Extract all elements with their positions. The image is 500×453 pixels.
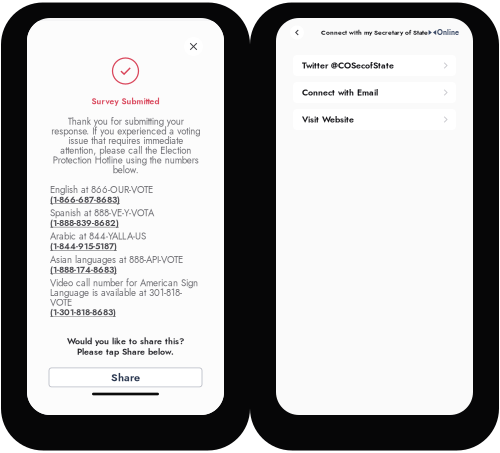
staticText: Video call number for American Sign Lang… [50, 278, 198, 307]
staticText: Please tap Share below. [77, 347, 174, 356]
staticText: Connect with my Secretary of State [321, 29, 428, 36]
staticText: Asian languages at 888-API-VOTE [50, 255, 183, 264]
button[interactable]: Back [290, 25, 304, 39]
staticText: Thank you for submitting your response. … [51, 116, 200, 175]
staticText: Survey Submitted [91, 97, 159, 105]
button[interactable]: Connect with Email [293, 82, 456, 103]
staticText: Share [111, 372, 140, 383]
staticText: Spanish at 888-VE-Y-VOTA [50, 208, 154, 218]
staticText: Arabic at 844-YALLA-US [50, 231, 146, 241]
staticText: (1-888-839-8682) [50, 218, 119, 227]
staticText: (1-888-174-8683) [50, 265, 117, 274]
staticText: Online [437, 29, 459, 36]
staticText: (1-844-915-5187) [50, 242, 117, 251]
staticText: Twitter @COSecofState [302, 61, 394, 70]
staticText: Visit Website [302, 115, 354, 124]
staticText: (1-301-818-8683) [50, 308, 116, 317]
staticText: Connect with Email [302, 88, 378, 97]
staticText: (1-866-687-8683) [50, 195, 120, 204]
staticText: Would you like to share this? [67, 337, 184, 346]
staticText: English at 866-OUR-VOTE [50, 185, 153, 194]
button[interactable]: Twitter @COSecofState [293, 55, 456, 76]
button[interactable]: Close [184, 37, 203, 56]
button[interactable]: Share [49, 368, 202, 387]
button[interactable]: Visit Website [293, 109, 456, 130]
